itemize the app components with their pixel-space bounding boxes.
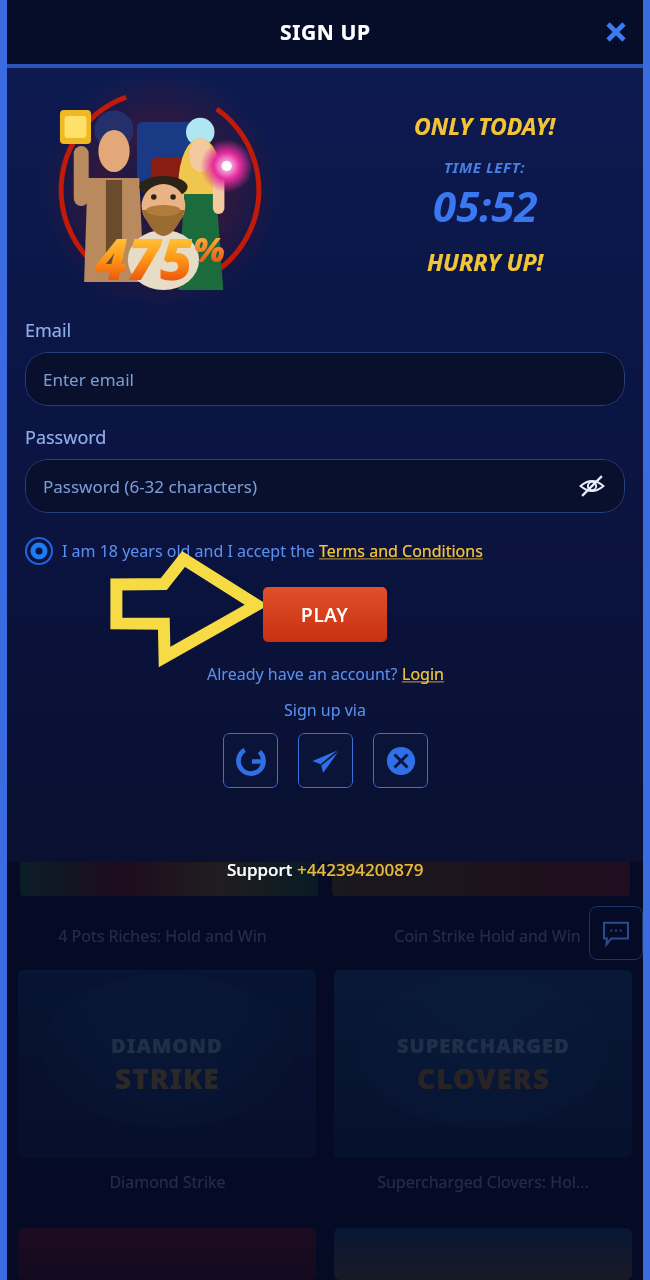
button[interactable]: SUPERCHARGED [334, 970, 632, 1206]
staticText: DIAMOND [111, 1032, 223, 1059]
staticText: I am 18 years old and I accept the [62, 540, 319, 562]
button[interactable]: SIGN UP [0, 0, 650, 64]
button[interactable]: DIAMOND [18, 970, 316, 1206]
button[interactable]: Close [594, 10, 638, 54]
staticText: Email [25, 318, 72, 343]
staticText: ONLY TODAY! [414, 110, 556, 141]
button[interactable]: Sign up with X [373, 733, 428, 788]
button[interactable]: I am 18 years old and I accept the [25, 537, 650, 565]
staticText: Enter email [43, 368, 134, 391]
staticText: Terms and Conditions [319, 540, 483, 562]
staticText: Sign up via [0, 699, 650, 721]
button[interactable]: Support chat [589, 906, 643, 960]
button[interactable]: PLAY [263, 587, 387, 642]
staticText: Password (6-32 characters) [43, 475, 258, 498]
staticText: Diamond Strike [109, 1171, 226, 1193]
staticText: HURRY UP! [427, 246, 544, 277]
button[interactable]: Sign up with Google [223, 733, 278, 788]
staticText: 4 Pots Riches: Hold and Win [58, 925, 267, 947]
staticText: 475 [95, 220, 193, 296]
staticText: +442394200879 [297, 858, 424, 881]
staticText: TIME LEFT: [444, 157, 526, 177]
button[interactable]: Terms and Conditions [319, 540, 483, 562]
staticText: % [193, 226, 225, 272]
staticText: CLOVERS [417, 1059, 550, 1097]
staticText: Support [227, 858, 297, 881]
button[interactable]: Support [227, 858, 424, 881]
button[interactable]: Sign up with Telegram [298, 733, 353, 788]
staticText: Password [25, 425, 107, 450]
staticText: Supercharged Clovers: Hol... [377, 1171, 589, 1193]
button[interactable]: Login [402, 663, 444, 685]
staticText: Login [402, 663, 444, 685]
staticText: SIGN UP [280, 18, 371, 47]
staticText: Already have an account? [207, 663, 402, 685]
button[interactable]: Show password [575, 469, 609, 503]
button[interactable]: Password (6-32 characters) [25, 459, 625, 513]
staticText: STRIKE [115, 1059, 220, 1097]
staticText: PLAY [301, 602, 349, 628]
staticText: SUPERCHARGED [397, 1032, 570, 1059]
button[interactable]: Enter email [25, 352, 625, 406]
staticText: Coin Strike Hold and Win [394, 925, 581, 947]
staticText: 05:52 [433, 177, 538, 234]
